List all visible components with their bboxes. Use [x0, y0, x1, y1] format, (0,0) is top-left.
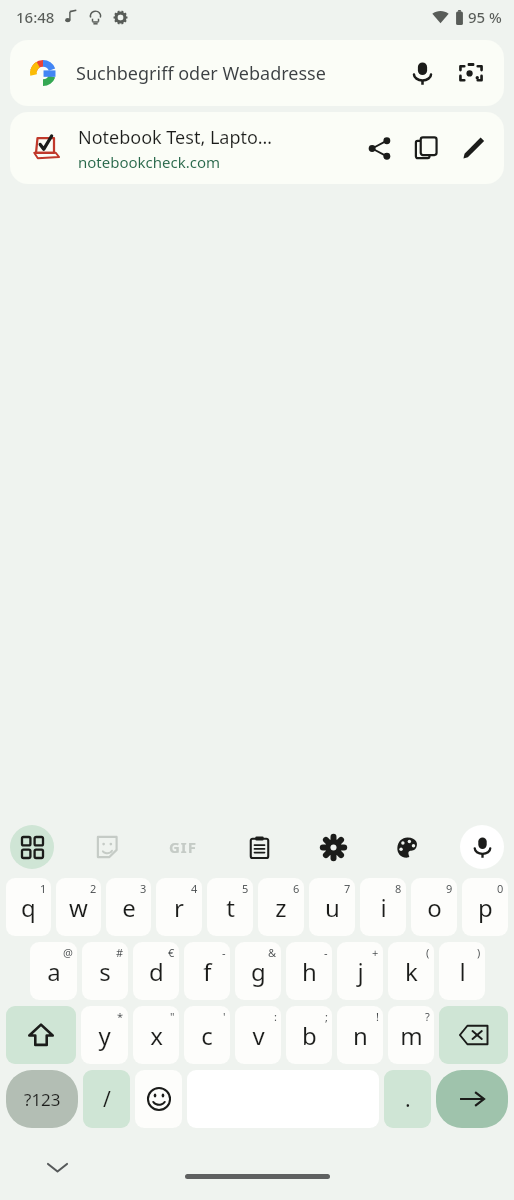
staticText: 95 % — [468, 7, 502, 27]
button[interactable]: Toolbox — [10, 825, 54, 869]
staticText: l — [459, 955, 466, 988]
button[interactable]: b — [286, 1006, 332, 1064]
button[interactable]: t — [207, 878, 253, 936]
staticText: 3 — [140, 881, 147, 896]
button[interactable]: m — [388, 1006, 434, 1064]
staticText: h — [302, 955, 317, 988]
staticText: w — [69, 891, 88, 924]
staticText: x — [150, 1019, 163, 1052]
staticText: 2 — [90, 881, 97, 896]
button[interactable]: Edit — [450, 124, 498, 172]
button[interactable]: v — [235, 1006, 281, 1064]
staticText: notebookcheck.com — [78, 152, 221, 172]
button[interactable]: q — [6, 878, 51, 936]
staticText: 16:48 — [16, 7, 55, 27]
staticText: s — [99, 955, 111, 988]
staticText: - — [324, 945, 328, 960]
staticText: 4 — [191, 881, 198, 896]
staticText: z — [275, 891, 287, 924]
staticText: k — [405, 955, 418, 988]
button[interactable]: Voice input — [460, 825, 504, 869]
button[interactable]: k — [388, 942, 434, 1000]
button[interactable]: z — [258, 878, 304, 936]
button[interactable]: / — [83, 1070, 130, 1128]
staticText: u — [325, 891, 340, 924]
staticText: n — [353, 1019, 368, 1052]
button[interactable]: Settings — [312, 826, 354, 868]
button[interactable]: n — [337, 1006, 383, 1064]
button[interactable]: d — [133, 942, 179, 1000]
staticText: : — [274, 1009, 277, 1024]
button[interactable]: Emoji — [135, 1070, 182, 1128]
staticText: y — [98, 1019, 111, 1052]
staticText: GIF — [169, 837, 197, 857]
button[interactable]: i — [360, 878, 406, 936]
staticText: 6 — [293, 881, 300, 896]
staticText: t — [226, 891, 235, 924]
staticText: ?123 — [24, 1088, 61, 1111]
staticText: ' — [223, 1009, 226, 1024]
staticText: ( — [426, 945, 430, 960]
staticText: d — [149, 955, 164, 988]
button[interactable]: r — [156, 878, 202, 936]
button[interactable]: e — [106, 878, 151, 936]
button[interactable]: Hide keyboard — [40, 1150, 74, 1184]
staticText: / — [103, 1085, 111, 1114]
button[interactable]: l — [439, 942, 485, 1000]
staticText: # — [116, 945, 124, 960]
staticText: r — [174, 891, 184, 924]
staticText: 8 — [395, 881, 402, 896]
staticText: g — [251, 955, 266, 988]
staticText: 1 — [40, 881, 47, 896]
button[interactable]: p — [462, 878, 508, 936]
button[interactable]: Suchbegriff oder Webadresse — [10, 40, 504, 106]
button[interactable]: y — [81, 1006, 128, 1064]
button[interactable]: Copy — [402, 124, 450, 172]
staticText: b — [302, 1019, 317, 1052]
button[interactable]: Shift — [6, 1006, 76, 1064]
staticText: & — [268, 945, 277, 960]
staticText: j — [357, 955, 364, 988]
staticText: m — [400, 1019, 423, 1052]
staticText: p — [478, 891, 493, 924]
staticText: - — [222, 945, 226, 960]
button[interactable]: Stickers — [86, 826, 128, 868]
staticText: ; — [325, 1009, 328, 1024]
staticText: f — [203, 955, 212, 988]
button[interactable]: Clipboard — [238, 826, 280, 868]
staticText: € — [168, 945, 175, 960]
staticText: + — [372, 945, 379, 960]
staticText: Suchbegriff oder Webadresse — [76, 61, 398, 86]
button[interactable]: Theme — [386, 826, 428, 868]
button[interactable]: x — [133, 1006, 179, 1064]
button[interactable]: Enter — [436, 1070, 508, 1128]
staticText: ! — [376, 1009, 379, 1024]
staticText: o — [427, 891, 442, 924]
button[interactable]: Voice search — [398, 49, 446, 97]
staticText: 9 — [446, 881, 453, 896]
button[interactable]: Google Lens — [446, 48, 496, 98]
button[interactable]: Notebook Test, Lapto… — [10, 112, 504, 184]
staticText: Notebook Test, Lapto… — [78, 125, 273, 150]
button[interactable]: Share — [356, 125, 402, 171]
button[interactable]: h — [286, 942, 332, 1000]
staticText: c — [201, 1019, 213, 1052]
button[interactable]: a — [30, 942, 77, 1000]
button[interactable]: u — [309, 878, 355, 936]
button[interactable]: g — [235, 942, 281, 1000]
button[interactable]: GIF — [160, 824, 206, 870]
staticText: a — [47, 955, 61, 988]
button[interactable]: c — [184, 1006, 230, 1064]
button[interactable]: w — [56, 878, 101, 936]
staticText: ? — [425, 1009, 430, 1024]
button[interactable]: . — [384, 1070, 431, 1128]
button[interactable]: f — [184, 942, 230, 1000]
button[interactable]: o — [411, 878, 457, 936]
staticText: 5 — [242, 881, 249, 896]
button[interactable]: s — [82, 942, 128, 1000]
button[interactable]: ?123 — [6, 1070, 78, 1128]
staticText: ) — [477, 945, 481, 960]
button[interactable]: Backspace — [439, 1006, 508, 1064]
button[interactable]: j — [337, 942, 383, 1000]
